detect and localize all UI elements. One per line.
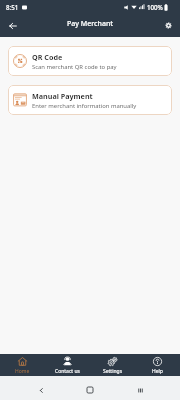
button[interactable]: Back	[4, 17, 21, 34]
staticText: Settings	[103, 368, 123, 375]
button[interactable]: Recents	[131, 381, 149, 399]
staticText: Scan merchant QR code to pay	[32, 63, 117, 71]
staticText: Contact us	[55, 368, 80, 375]
staticText: Pay Merchant	[67, 19, 113, 29]
staticText: Enter merchant information manually	[32, 102, 137, 110]
button[interactable]: QR Code	[8, 46, 172, 76]
staticText: Help	[152, 368, 163, 375]
button[interactable]: Home	[81, 381, 99, 399]
button[interactable]: Help	[135, 354, 180, 376]
button[interactable]: Settings	[160, 17, 177, 34]
staticText: Home	[15, 368, 30, 375]
staticText: Manual Payment	[32, 91, 93, 101]
staticText: QR Code	[32, 52, 63, 62]
button[interactable]: Contact us	[45, 354, 90, 376]
button[interactable]: Back	[32, 381, 50, 399]
button[interactable]: Settings	[90, 354, 135, 376]
button[interactable]: Manual Payment	[8, 85, 172, 115]
staticText: 8:51	[6, 3, 19, 11]
button[interactable]: Home	[0, 354, 45, 376]
staticText: 100%	[147, 3, 163, 11]
